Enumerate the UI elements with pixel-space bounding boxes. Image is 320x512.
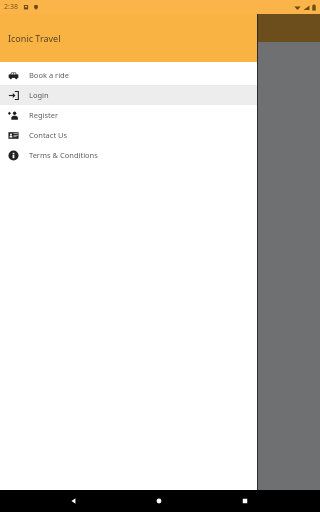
button[interactable]: Terms & Conditions bbox=[0, 145, 258, 165]
button[interactable]: Back bbox=[63, 490, 85, 512]
staticText: 2:38 bbox=[4, 2, 18, 12]
staticText: Register bbox=[29, 110, 59, 120]
staticText: Book a ride bbox=[29, 70, 69, 80]
staticText: Login bbox=[29, 90, 49, 100]
button[interactable]: Recent apps bbox=[234, 490, 256, 512]
button[interactable]: Login bbox=[0, 85, 258, 105]
button[interactable]: Register bbox=[0, 105, 258, 125]
staticText: Contact Us bbox=[29, 130, 68, 140]
button[interactable]: Book a ride bbox=[0, 65, 258, 85]
button[interactable]: Home bbox=[148, 490, 170, 512]
staticText: Terms & Conditions bbox=[29, 150, 98, 160]
staticText: Iconic Travel bbox=[8, 32, 61, 44]
button[interactable]: Contact Us bbox=[0, 125, 258, 145]
